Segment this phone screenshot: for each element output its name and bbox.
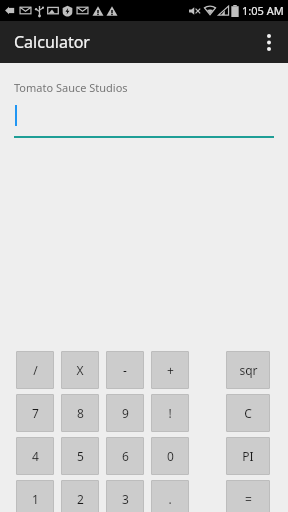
button[interactable]: PI [226, 437, 270, 475]
button[interactable]: 0 [151, 437, 189, 475]
button[interactable]: 6 [106, 437, 144, 475]
button[interactable]: 7 [16, 394, 54, 432]
staticText: 2 [77, 491, 84, 507]
button[interactable]: sqr [226, 351, 270, 389]
button[interactable]: X [61, 351, 99, 389]
staticText: C [244, 405, 252, 421]
button[interactable]: More options [250, 23, 288, 61]
staticText: PI [242, 448, 254, 464]
button[interactable]: ! [151, 394, 189, 432]
staticText: ! [168, 405, 172, 421]
staticText: 1 [32, 491, 39, 507]
staticText: + [167, 362, 174, 378]
staticText: . [168, 491, 172, 507]
button[interactable]: 2 [61, 480, 99, 512]
staticText: 8 [77, 405, 84, 421]
button[interactable]: = [226, 480, 270, 512]
staticText: 1:05 AM [242, 3, 284, 18]
button[interactable]: 8 [61, 394, 99, 432]
button[interactable]: 5 [61, 437, 99, 475]
staticText: 0 [167, 448, 174, 464]
staticText: Calculator [14, 31, 90, 53]
staticText: 6 [122, 448, 129, 464]
button[interactable]: C [226, 394, 270, 432]
staticText: 5 [77, 448, 84, 464]
staticText: 4 [32, 448, 39, 464]
button[interactable]: / [16, 351, 54, 389]
staticText: 9 [122, 405, 129, 421]
button[interactable] [14, 104, 274, 139]
button[interactable]: . [151, 480, 189, 512]
staticText: / [33, 362, 38, 378]
staticText: Tomato Sauce Studios [14, 80, 128, 95]
button[interactable]: 4 [16, 437, 54, 475]
staticText: = [245, 491, 252, 507]
staticText: X [76, 362, 84, 378]
staticText: sqr [239, 362, 258, 378]
button[interactable]: 3 [106, 480, 144, 512]
button[interactable]: + [151, 351, 189, 389]
button[interactable]: 9 [106, 394, 144, 432]
staticText: - [123, 362, 127, 378]
staticText: 7 [32, 405, 39, 421]
button[interactable]: 1 [16, 480, 54, 512]
staticText: 3 [122, 491, 129, 507]
button[interactable]: - [106, 351, 144, 389]
